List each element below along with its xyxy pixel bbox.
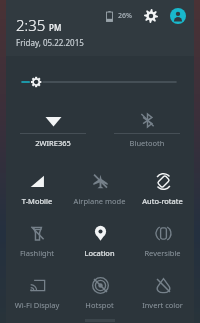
staticText: Invert color xyxy=(131,300,194,310)
button[interactable]: Flashlight xyxy=(6,214,68,266)
button[interactable]: Reversible xyxy=(131,214,194,266)
button[interactable]: Airplane mode xyxy=(68,162,131,214)
button[interactable]: Location xyxy=(68,214,131,266)
staticText: Wi-Fi Display xyxy=(6,300,68,310)
button[interactable]: Brightness xyxy=(6,70,194,94)
button[interactable]: Auto-rotate xyxy=(131,162,194,214)
button[interactable]: Bluetooth xyxy=(100,106,194,154)
button[interactable]: User profile xyxy=(168,6,188,26)
button[interactable]: Invert color xyxy=(131,266,194,318)
staticText: PM xyxy=(49,22,62,33)
staticText: Flashlight xyxy=(6,248,68,258)
staticText: Bluetooth xyxy=(114,138,180,148)
button[interactable]: 2:35 xyxy=(16,15,84,48)
button[interactable]: Wi-Fi Display xyxy=(6,266,68,318)
button[interactable]: Hotspot xyxy=(68,266,131,318)
staticText: Friday, 05.22.2015 xyxy=(16,37,84,48)
staticText: Location xyxy=(68,248,131,258)
staticText: Auto-rotate xyxy=(131,196,194,206)
staticText: Reversible xyxy=(131,248,194,258)
staticText: 2WIRE365 xyxy=(20,138,86,148)
button[interactable]: Settings xyxy=(141,6,161,26)
staticText: Hotspot xyxy=(68,300,131,310)
staticText: T-Mobile xyxy=(6,196,68,206)
staticText: 2:35 xyxy=(16,15,46,35)
button[interactable]: T-Mobile xyxy=(6,162,68,214)
staticText: Airplane mode xyxy=(68,196,131,206)
button[interactable]: 2WIRE365 xyxy=(6,106,100,154)
staticText: 26% xyxy=(118,11,132,21)
